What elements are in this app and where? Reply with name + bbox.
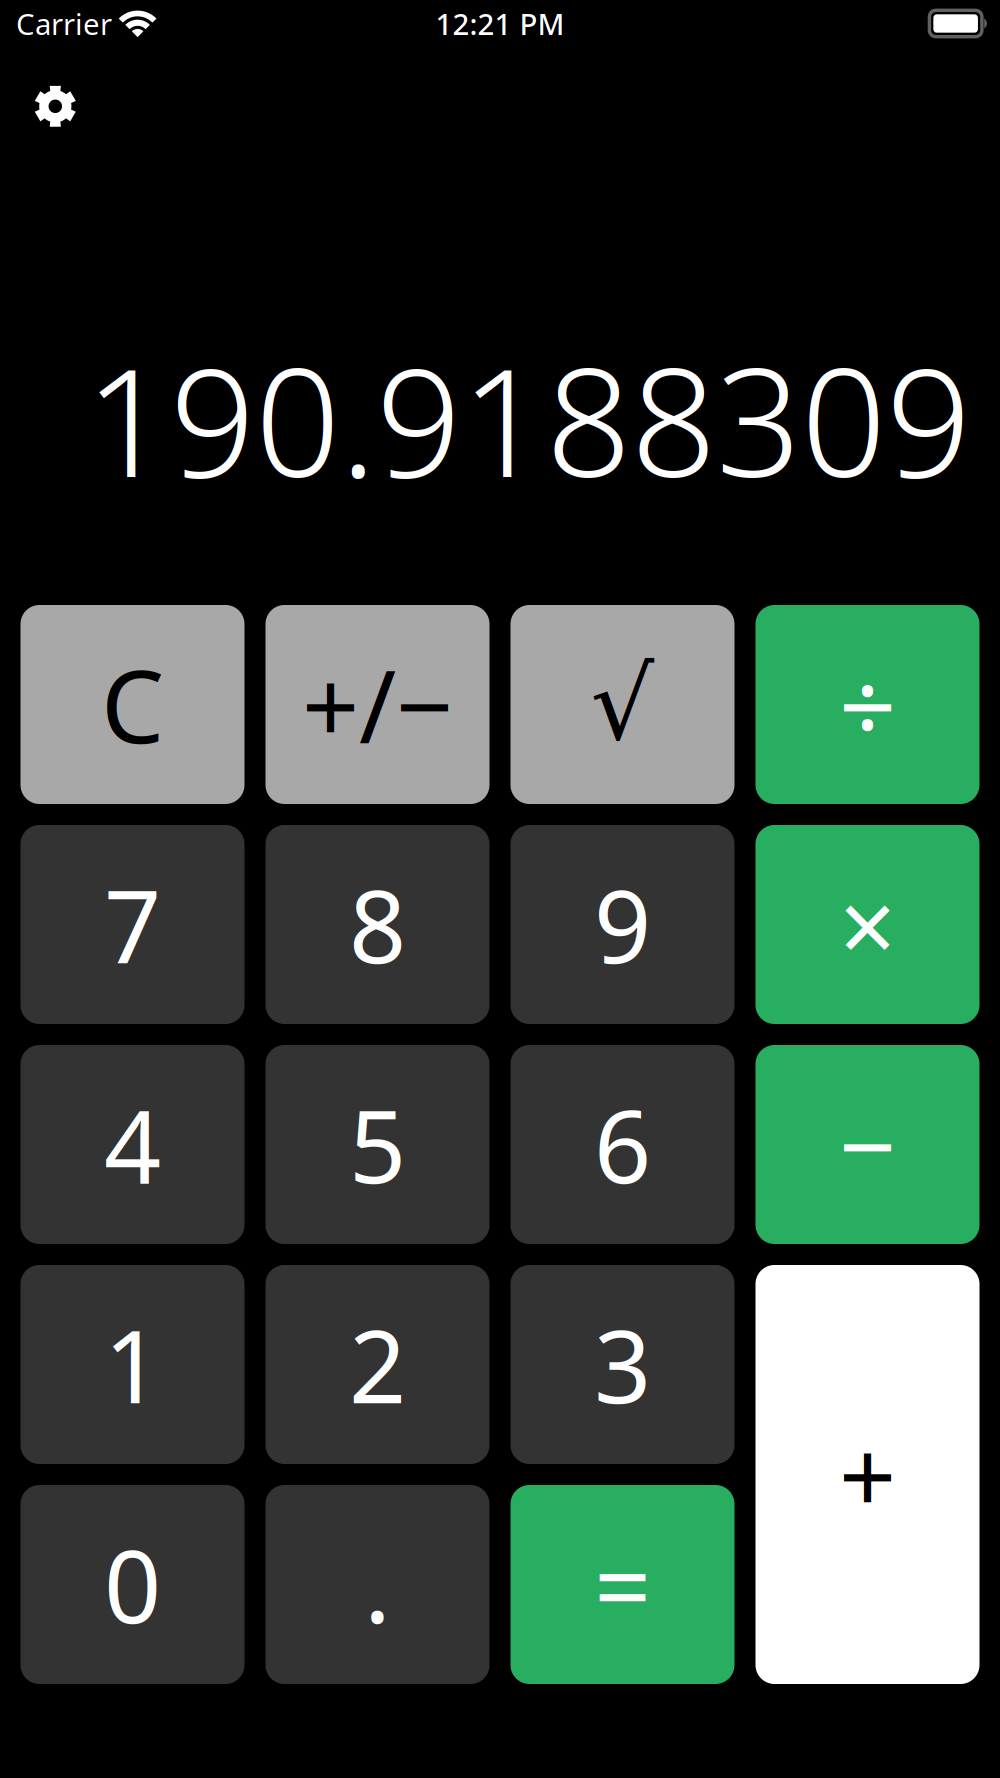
staticText: − [839,1078,896,1211]
staticText: 5 [349,1078,406,1211]
staticText: 0 [104,1518,161,1651]
staticText: 7 [104,858,161,991]
button[interactable]: ÷ [755,605,979,804]
staticText: 9 [594,858,651,991]
staticText: 3 [594,1298,651,1431]
staticText: 1 [104,1298,161,1431]
staticText: . [364,1518,391,1651]
button[interactable]: C [20,605,244,804]
button[interactable]: 5 [265,1045,489,1244]
button[interactable]: = [510,1485,734,1684]
button[interactable]: 8 [265,825,489,1024]
staticText: 4 [104,1078,161,1211]
staticText: ÷ [839,638,896,771]
button[interactable]: 6 [510,1045,734,1244]
staticText: 8 [349,858,406,991]
button[interactable]: 7 [20,825,244,1024]
button[interactable]: . [265,1485,489,1684]
staticText: 190.9188309 [85,320,971,518]
staticText: √ [590,648,654,761]
staticText: C [101,638,164,771]
button[interactable]: +/− [265,605,489,804]
staticText: × [839,858,896,991]
button[interactable]: + [755,1265,979,1684]
staticText: +/− [302,638,453,771]
button[interactable]: 2 [265,1265,489,1464]
staticText: 2 [349,1298,406,1431]
button[interactable]: × [755,825,979,1024]
button[interactable]: Settings [0,47,99,146]
button[interactable]: − [755,1045,979,1244]
staticText: + [839,1408,896,1541]
button[interactable]: 4 [20,1045,244,1244]
button[interactable]: 9 [510,825,734,1024]
staticText: Carrier [16,4,112,43]
staticText: 6 [594,1078,651,1211]
button[interactable]: √ [510,605,734,804]
button[interactable]: 0 [20,1485,244,1684]
button[interactable]: 1 [20,1265,244,1464]
staticText: 12:21 PM [435,4,564,43]
staticText: = [594,1518,651,1651]
button[interactable]: 3 [510,1265,734,1464]
